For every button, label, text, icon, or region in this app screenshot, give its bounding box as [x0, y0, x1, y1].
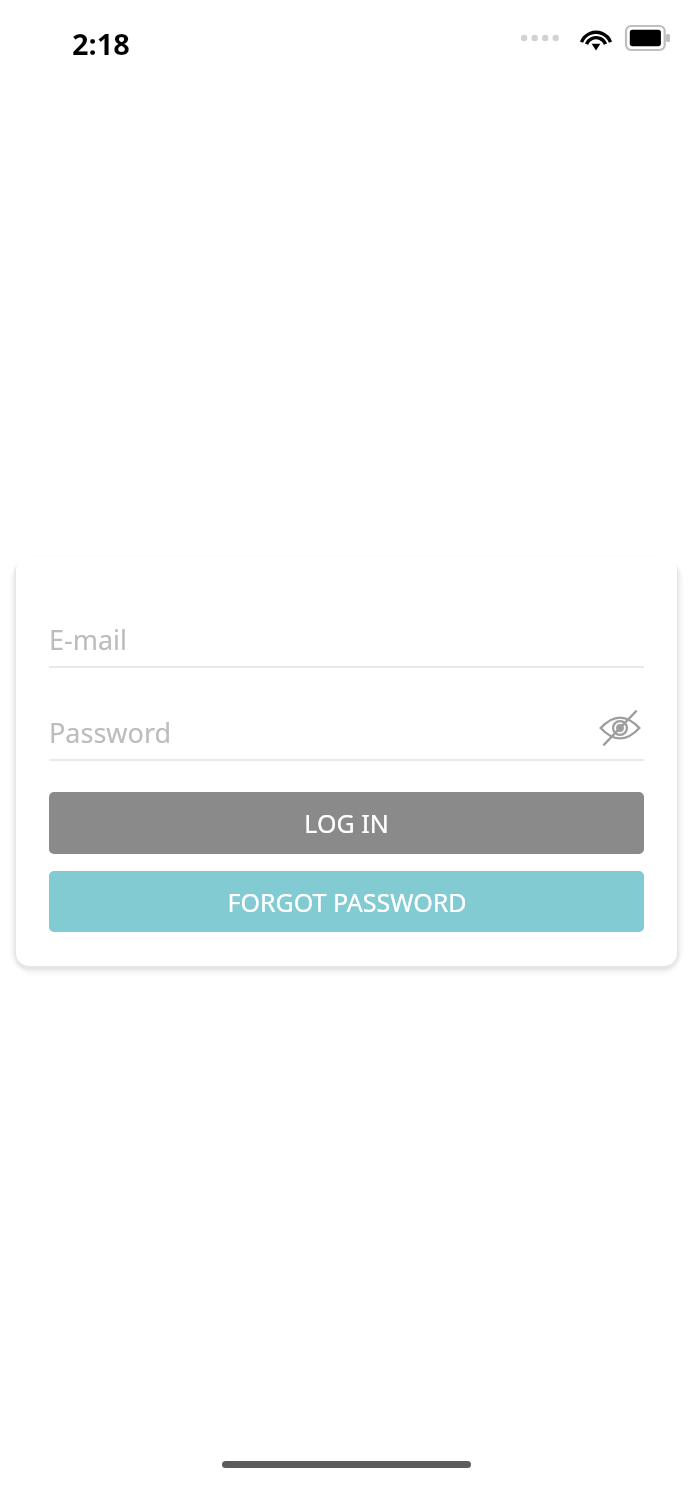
staticText: E-mail	[49, 621, 128, 658]
staticText: 2:18	[72, 24, 130, 63]
button[interactable]: LOG IN	[49, 792, 644, 854]
staticText: FORGOT PASSWORD	[227, 885, 467, 919]
staticText: LOG IN	[304, 806, 389, 840]
button[interactable]: Show password	[596, 704, 644, 752]
button[interactable]: E-mail	[49, 610, 644, 668]
staticText: Password	[49, 714, 172, 751]
button[interactable]: FORGOT PASSWORD	[49, 871, 644, 932]
button[interactable]	[49, 703, 644, 761]
